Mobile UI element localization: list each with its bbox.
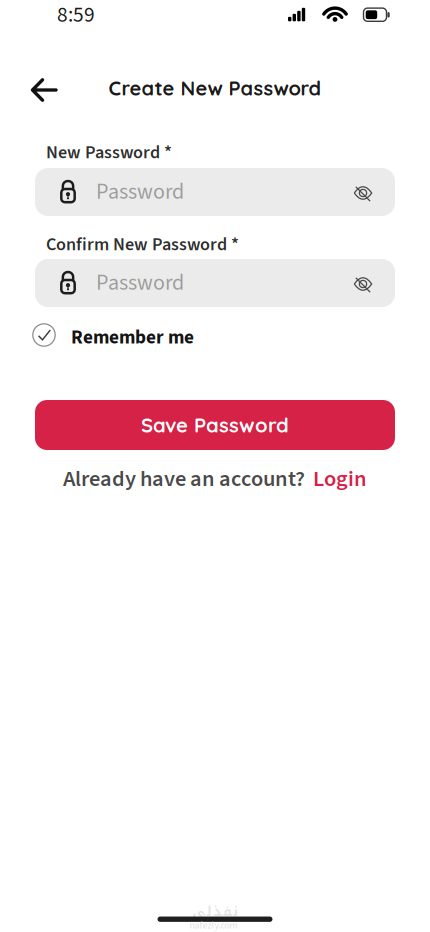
button[interactable]: Show password (343, 259, 383, 307)
staticText: Remember me (71, 324, 194, 351)
staticText: Password (96, 176, 184, 208)
staticText: Confirm New Password * (46, 232, 239, 257)
staticText: Create New Password (108, 75, 321, 100)
button[interactable]: Login (313, 463, 367, 495)
staticText: Password (96, 267, 184, 299)
button[interactable]: Show password (343, 168, 383, 216)
staticText: نفذلي (191, 899, 236, 923)
button[interactable]: Save Password (35, 400, 395, 450)
staticText: Save Password (141, 412, 289, 438)
button[interactable]: Back (22, 68, 66, 112)
staticText: Already have an account? (63, 463, 305, 495)
button[interactable]: Remember me (32, 321, 194, 349)
staticText: New Password * (46, 140, 172, 165)
staticText: Login (313, 463, 367, 495)
staticText: 8:59 (57, 0, 95, 30)
staticText: nafezly.com (189, 918, 237, 932)
